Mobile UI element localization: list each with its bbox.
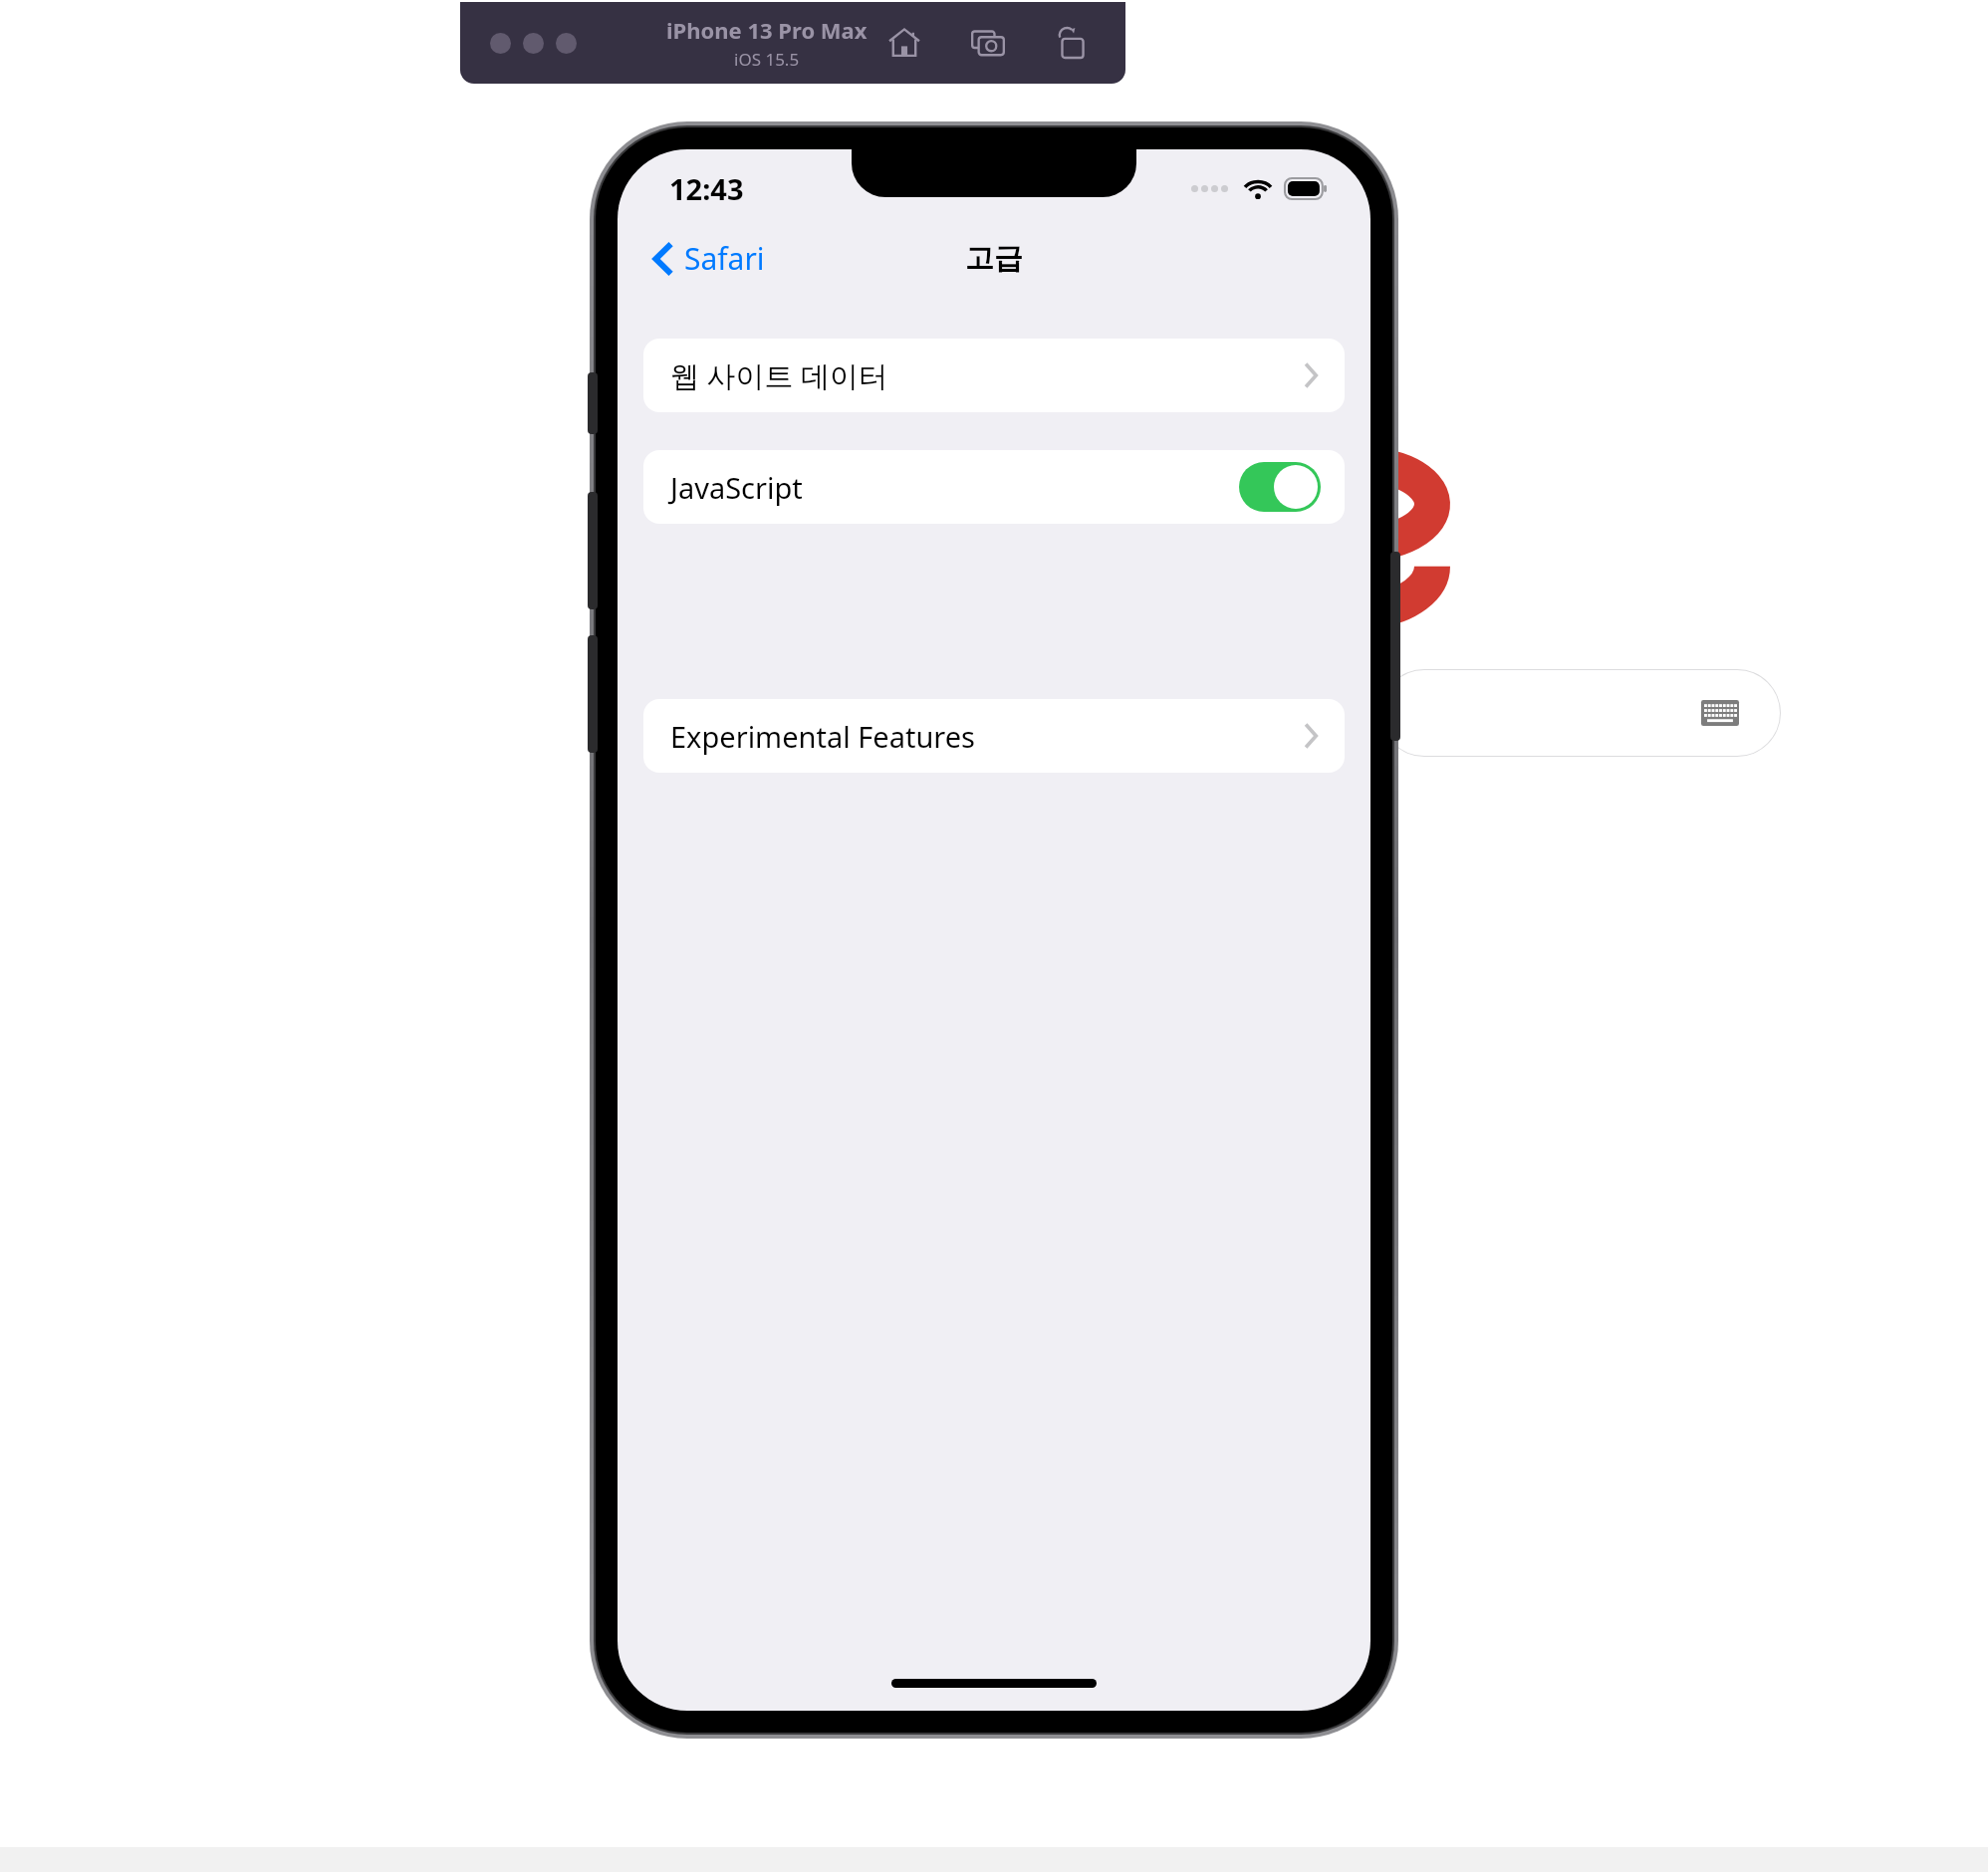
button[interactable]	[523, 33, 544, 54]
button[interactable]: Safari	[645, 232, 773, 285]
staticText: Experimental Features	[670, 717, 975, 756]
button[interactable]: JavaScript toggle, on	[1239, 462, 1321, 512]
button[interactable]: 웹 사이트 데이터	[643, 339, 1345, 412]
staticText: 12:43	[669, 169, 744, 208]
staticText: iPhone 13 Pro Max	[666, 15, 868, 45]
button[interactable]: Experimental Features	[643, 699, 1345, 773]
other: Keyboard input	[1701, 700, 1739, 726]
button[interactable]	[490, 33, 511, 54]
button[interactable]: Home	[884, 23, 924, 63]
button[interactable]	[556, 33, 577, 54]
button[interactable]: Keyboard input	[1380, 669, 1781, 757]
button[interactable]: Rotate	[1052, 23, 1092, 63]
staticText: 고급	[965, 240, 1023, 277]
staticText: iOS 15.5	[734, 48, 800, 71]
staticText: 웹 사이트 데이터	[670, 355, 888, 395]
staticText: JavaScript	[670, 468, 803, 507]
staticText: Safari	[684, 238, 765, 279]
button[interactable]: Screenshot	[968, 23, 1008, 63]
